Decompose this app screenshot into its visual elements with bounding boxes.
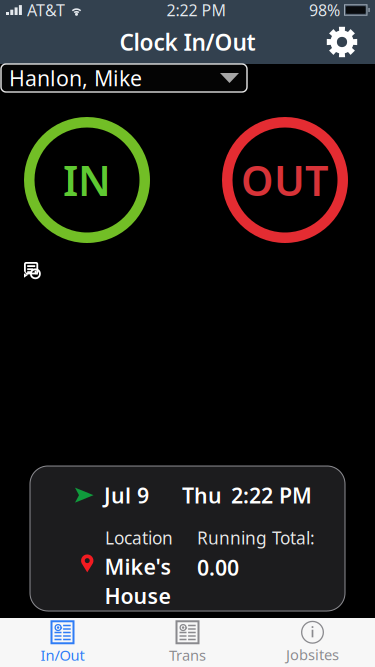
staticText: 2:22 PM [166,0,226,21]
staticText: In/Out [40,645,84,665]
staticText: Hanlon, Mike [9,64,142,92]
button[interactable]: IN [24,117,150,243]
button[interactable]: Timesheet notes [0,259,47,283]
staticText: 2:22 PM [231,481,312,509]
staticText: Clock In/Out [119,27,255,57]
staticText: 0.00 [197,553,239,582]
staticText: 98% [309,0,340,21]
staticText: Trans [169,645,206,665]
button[interactable]: Settings [320,20,364,64]
staticText: OUT [241,153,329,207]
staticText: IN [63,153,111,207]
staticText: Running Total: [197,526,315,549]
staticText: Location [105,526,173,549]
staticText: AT&T [27,0,65,21]
staticText: Jobsites [286,645,339,664]
staticText: House [104,582,170,610]
button[interactable]: Hanlon, Mike [1,64,247,92]
button[interactable]: Jobsites [250,618,375,667]
staticText: Thu [182,481,222,509]
button[interactable]: Trans [125,618,250,667]
staticText: Jul 9 [104,481,149,509]
button[interactable]: In/Out [0,618,125,667]
button[interactable]: OUT [222,117,348,243]
staticText: Mike's [104,552,171,581]
